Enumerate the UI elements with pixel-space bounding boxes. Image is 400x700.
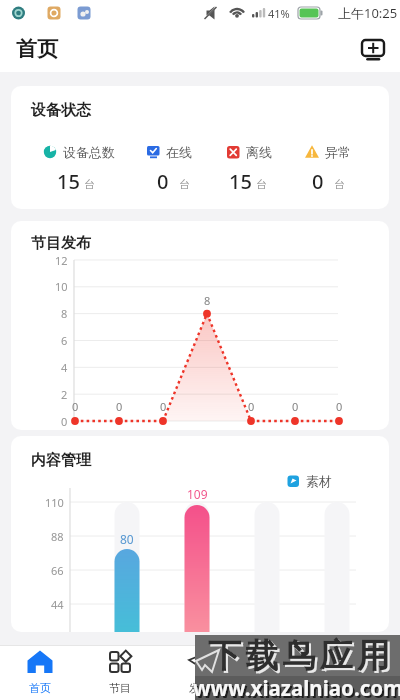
staticText: 下载鸟应用	[208, 637, 394, 679]
staticText: www.xiazalniao.com	[195, 676, 400, 700]
staticText: 41%	[268, 6, 290, 21]
staticText: 6	[61, 333, 68, 348]
staticText: 离线	[246, 144, 272, 160]
staticText: 台	[256, 177, 267, 191]
staticText: 异常	[325, 144, 351, 160]
staticText: 节目发布	[31, 234, 91, 253]
staticText: 2	[61, 387, 68, 402]
staticText: 0	[336, 399, 343, 414]
staticText: 台	[179, 177, 190, 191]
button[interactable]	[170, 648, 230, 698]
staticText: 0	[312, 168, 324, 195]
staticText: 0	[292, 399, 299, 414]
staticText: 设备状态	[31, 101, 91, 120]
staticText: 0	[116, 399, 123, 414]
staticText: 0	[248, 399, 255, 414]
staticText: 44	[51, 597, 64, 612]
staticText: 首页	[29, 681, 51, 695]
staticText: 88	[51, 529, 64, 544]
staticText: 80	[120, 531, 134, 547]
staticText: 15	[229, 168, 252, 195]
staticText: 台	[84, 177, 95, 191]
staticText: 台	[334, 177, 345, 191]
staticText: 在线	[166, 144, 192, 160]
staticText: 内容管理	[31, 451, 91, 470]
staticText: 0	[160, 399, 167, 414]
staticText: 节目	[109, 681, 131, 695]
staticText: 8	[204, 293, 211, 308]
staticText: 15	[57, 168, 80, 195]
staticText: 0	[72, 399, 79, 414]
staticText: 0	[157, 168, 169, 195]
staticText: 12	[55, 253, 68, 268]
staticText: 8	[61, 306, 68, 321]
staticText: 素材	[306, 473, 332, 489]
staticText: 发布	[189, 681, 211, 695]
staticText: 下载鸟应用	[206, 635, 392, 677]
staticText: 10	[55, 279, 68, 294]
staticText: 上午10:25	[338, 4, 398, 22]
button[interactable]	[90, 648, 150, 698]
button[interactable]	[10, 648, 70, 698]
staticText: 设备总数	[63, 144, 115, 160]
staticText: 66	[51, 563, 64, 578]
staticText: 109	[187, 486, 208, 502]
staticText: www.xiazalniao.com	[193, 674, 400, 700]
staticText: 110	[45, 495, 64, 510]
button[interactable]	[354, 32, 394, 68]
staticText: 首页	[16, 36, 58, 62]
staticText: 0	[61, 414, 68, 429]
staticText: 4	[61, 360, 68, 375]
